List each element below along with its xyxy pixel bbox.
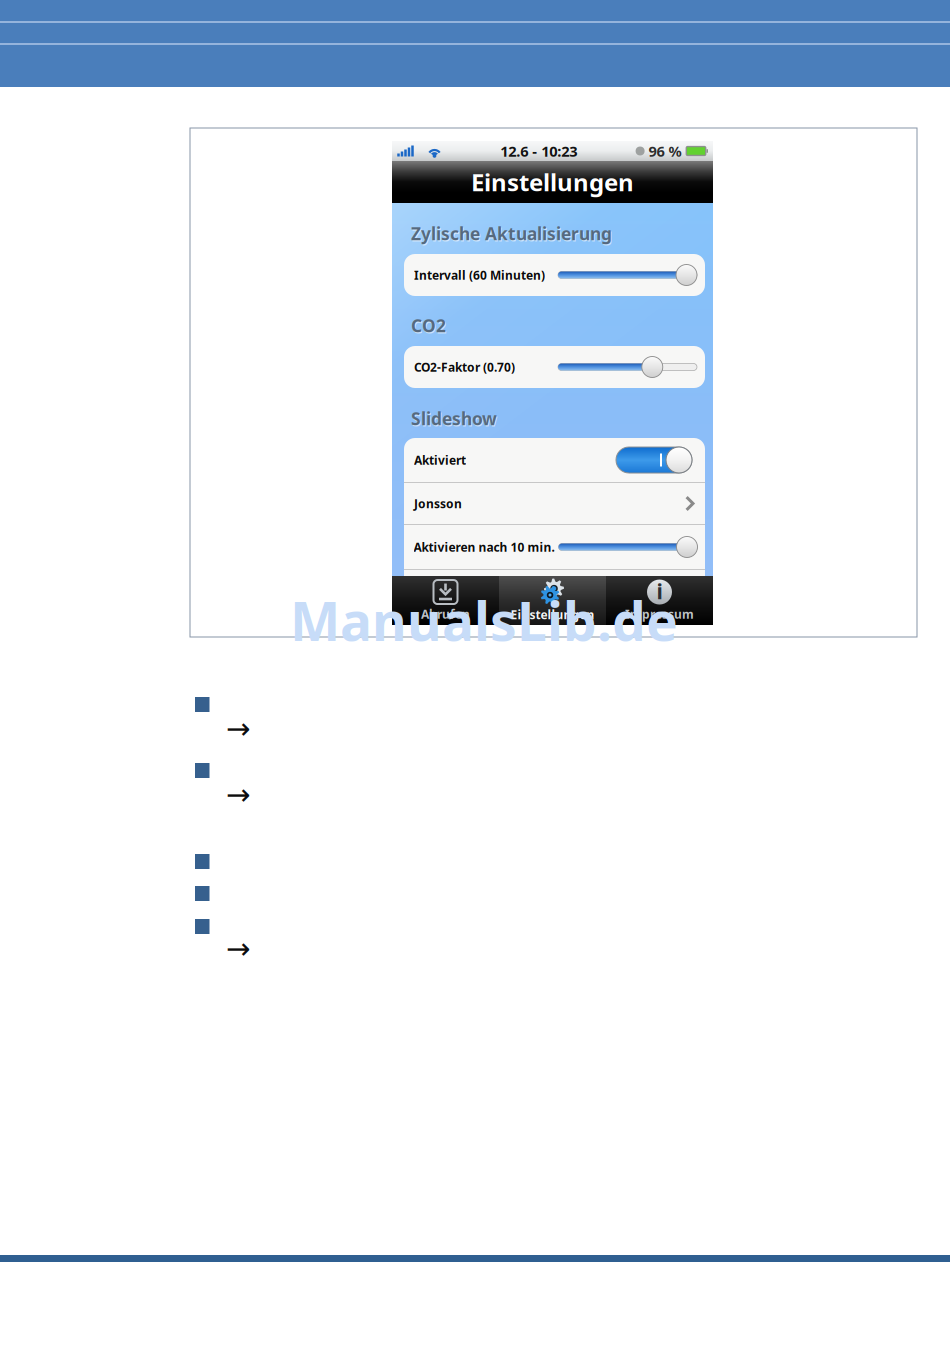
button[interactable]: Intervall (60 Minuten) <box>404 254 705 296</box>
staticText: CO2-Faktor (0.70) <box>414 359 515 375</box>
staticText: Aktivieren nach 10 min. <box>413 539 554 555</box>
staticText: CO2 <box>411 314 446 337</box>
button[interactable]: CO2-Faktor (0.70) <box>404 346 705 388</box>
staticText: Abrufen <box>421 606 470 622</box>
staticText: Aktiviert <box>414 452 466 468</box>
staticText: Intervall (60 Minuten) <box>414 267 545 283</box>
staticText: i <box>656 577 662 605</box>
staticText: Slideshow <box>411 407 497 430</box>
staticText: Jonsson <box>414 495 462 511</box>
button[interactable]: i <box>606 576 713 625</box>
staticText: → <box>226 712 251 745</box>
staticText: Einstellungen <box>471 166 634 198</box>
button[interactable]: Einstellungen <box>499 576 606 625</box>
staticText: 96 % <box>649 141 682 161</box>
button[interactable]: Aktiviert <box>404 438 705 482</box>
staticText: CO2 <box>412 315 447 338</box>
button[interactable]: Abrufen <box>392 576 499 625</box>
staticText: Impressum <box>625 606 694 622</box>
staticText: → <box>226 932 251 965</box>
staticText: Zylische Aktualisierung <box>412 223 613 246</box>
staticText: → <box>226 778 251 811</box>
button[interactable]: Aktivieren nach 10 min. <box>404 525 705 569</box>
staticText: Slideshow <box>412 408 498 431</box>
button[interactable]: Jonsson <box>404 483 705 524</box>
staticText: Einstellungen <box>510 606 594 622</box>
staticText: 12.6 - 10:23 <box>500 141 577 161</box>
staticText: ManualsLib.de <box>290 585 678 656</box>
staticText: Zylische Aktualisierung <box>411 222 612 245</box>
